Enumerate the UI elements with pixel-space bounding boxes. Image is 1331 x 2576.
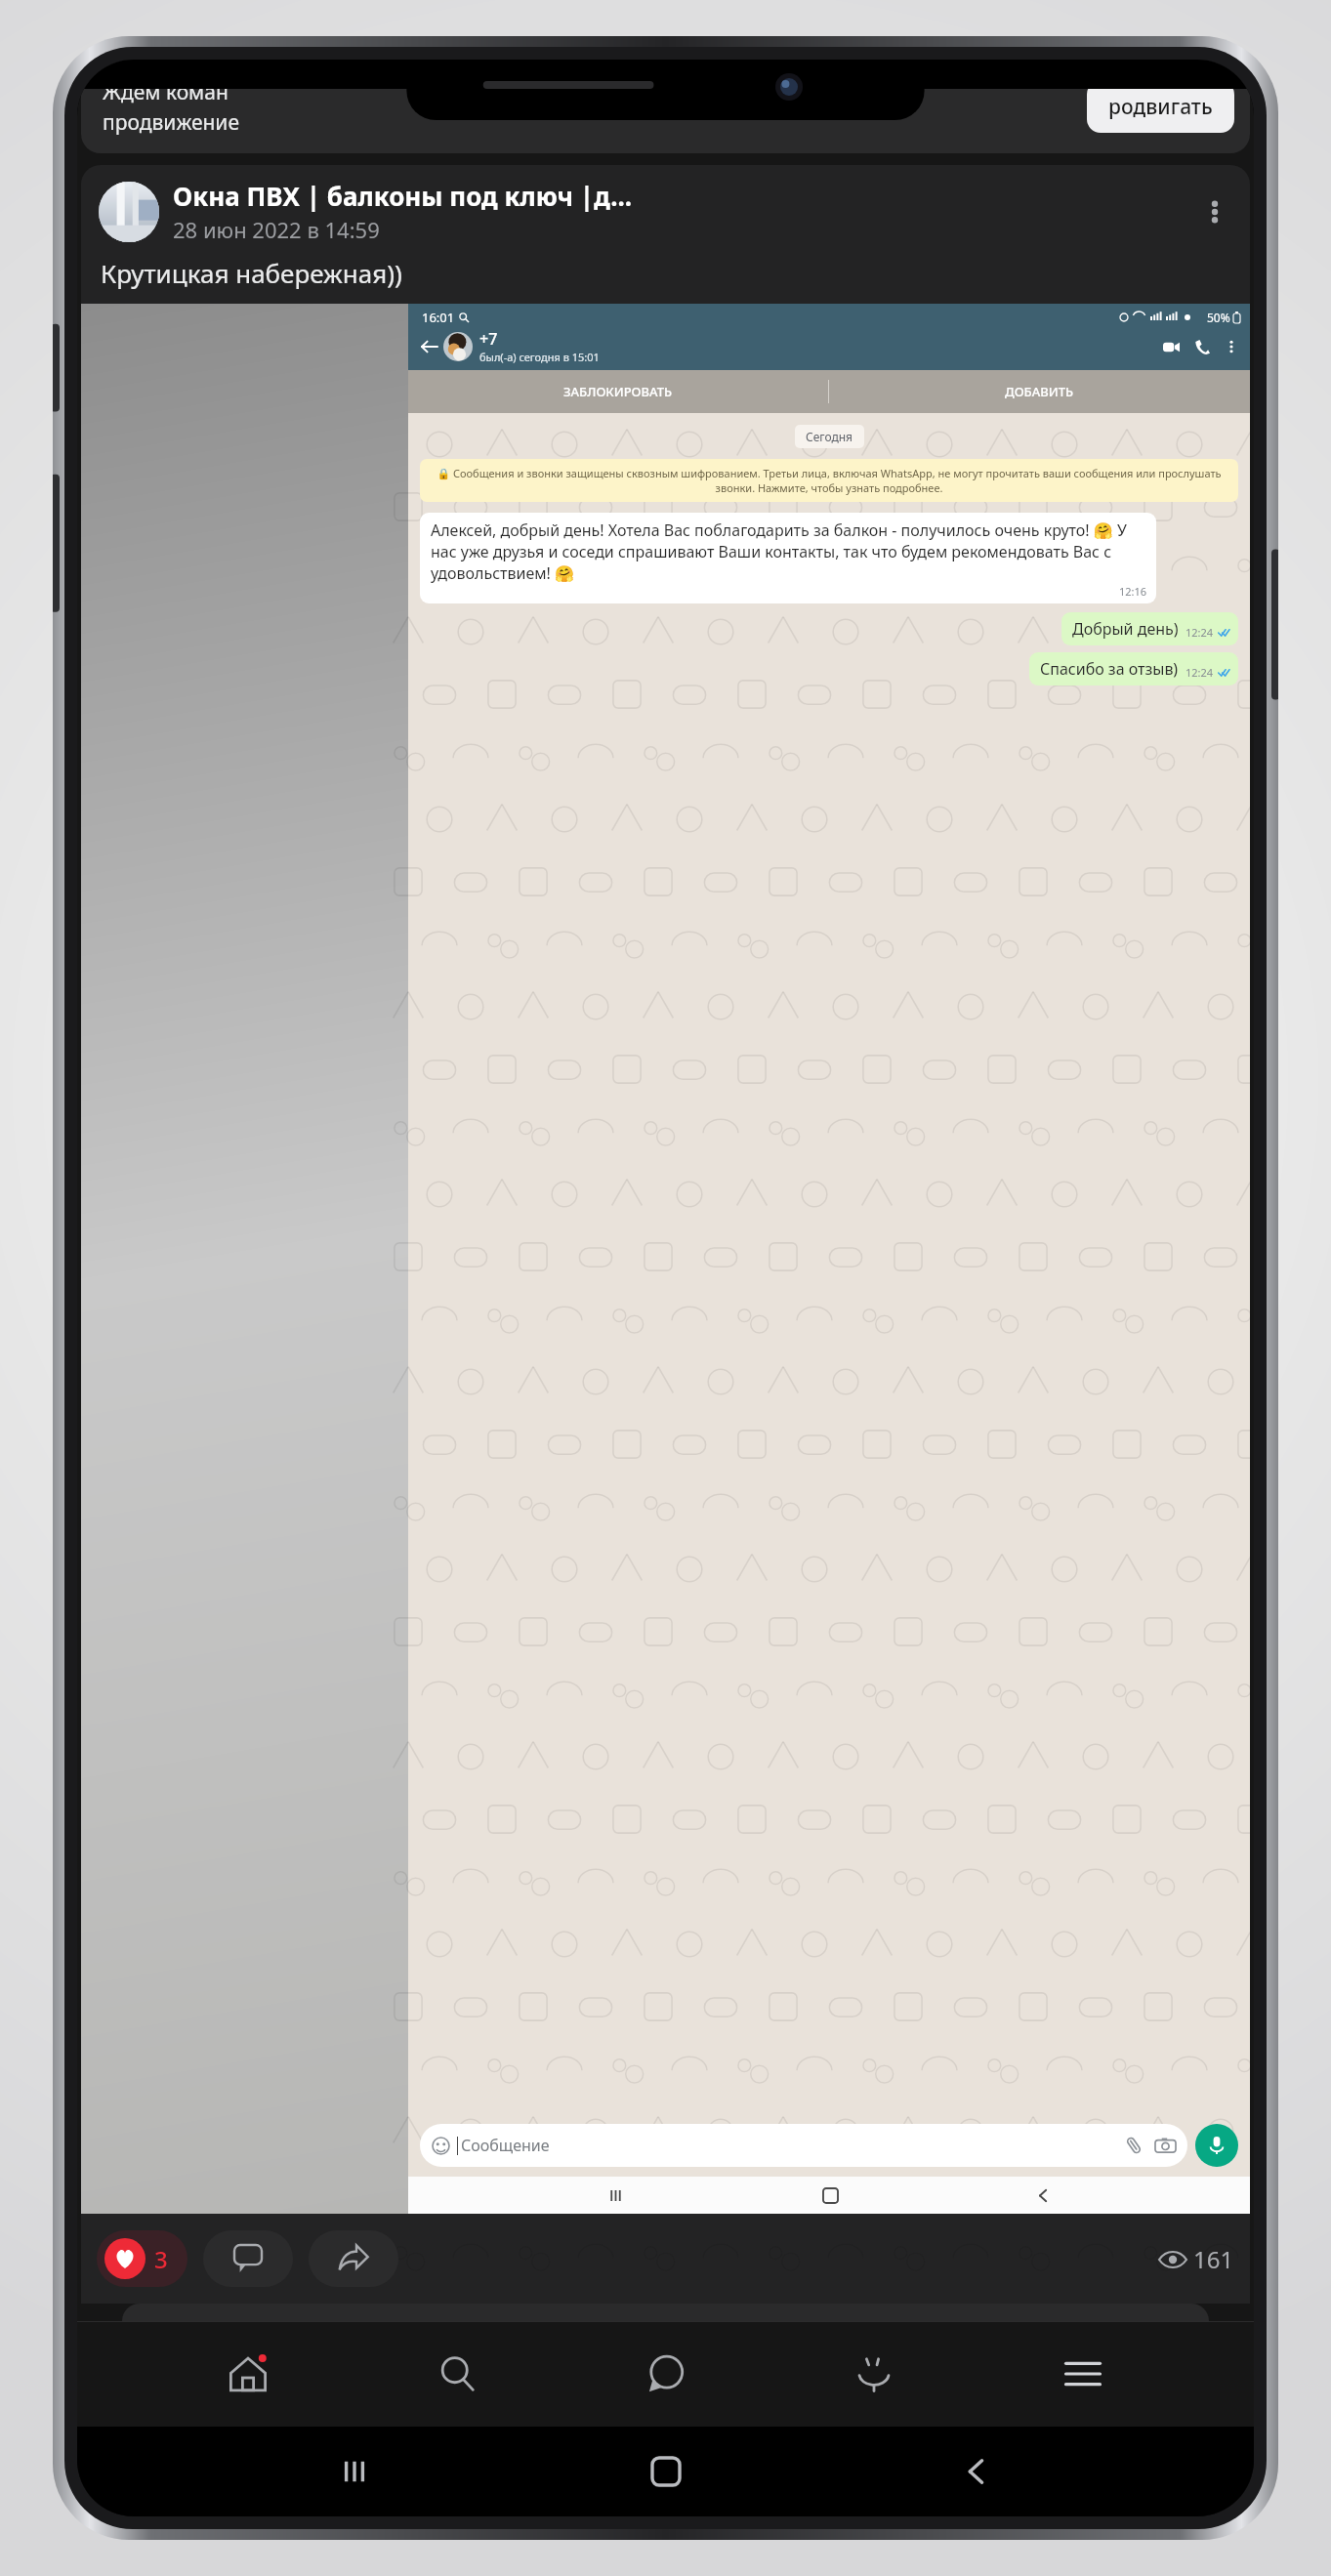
button[interactable]: Share	[309, 2230, 398, 2287]
button[interactable]: Menu	[1221, 336, 1242, 357]
button[interactable]: Menu	[1045, 2336, 1121, 2412]
staticText: 161	[1193, 2243, 1234, 2275]
button[interactable]: Back	[942, 2437, 1011, 2506]
staticText: 16:01	[422, 309, 455, 326]
button[interactable]: ЗАБЛОКИРОВАТЬ	[408, 370, 828, 413]
button[interactable]: Ждём коман продвижение	[81, 60, 1250, 153]
button[interactable]: Home	[210, 2336, 286, 2412]
staticText: 28 июн 2022 в 14:59	[173, 215, 380, 244]
staticText: Окна ПВХ | балконы под ключ |д...	[173, 179, 633, 213]
button[interactable]: Clips	[836, 2336, 912, 2412]
button[interactable]: Voice message	[1195, 2124, 1238, 2167]
button[interactable]: 3	[97, 2230, 187, 2287]
staticText: Алексей, добрый день! Хотела Вас поблаго…	[431, 519, 1147, 584]
staticText: Ждём коман продвижение	[103, 78, 239, 136]
button[interactable]: ДОБАВИТЬ	[829, 370, 1250, 413]
staticText: ДОБАВИТЬ	[1005, 383, 1074, 400]
button[interactable]: Messages	[628, 2336, 704, 2412]
staticText: 🔒 Сообщения и звонки защищены сквозным ш…	[432, 466, 1227, 495]
button[interactable]: Окна ПВХ | балконы под ключ |д...	[99, 179, 1236, 244]
button[interactable]: More options	[1193, 190, 1236, 233]
staticText: Добрый день)	[1072, 618, 1179, 640]
staticText: 3	[154, 2243, 168, 2275]
staticText: Сообщение	[461, 2135, 550, 2156]
other: Attach	[1124, 2136, 1144, 2155]
staticText: 12:16	[1119, 584, 1147, 599]
staticText: 12:24	[1185, 665, 1214, 680]
button[interactable]: Home	[632, 2437, 700, 2506]
button[interactable]: Call	[1189, 334, 1215, 359]
button[interactable]: Back	[416, 334, 441, 359]
staticText: Крутицкая набережная))	[101, 256, 402, 290]
button[interactable]: родвигать	[1087, 81, 1234, 133]
staticText: 50%	[1207, 310, 1230, 325]
staticText: родвигать	[1108, 93, 1213, 121]
staticText: ЗАБЛОКИРОВАТЬ	[563, 383, 673, 400]
staticText: Спасибо за отзыв)	[1040, 658, 1179, 680]
button[interactable]: Video call	[1158, 334, 1184, 359]
button[interactable]: Recents	[320, 2437, 389, 2506]
staticText: был(-а) сегодня в 15:01	[479, 350, 600, 364]
staticText: Сегодня	[806, 429, 853, 444]
other: Camera	[1155, 2136, 1176, 2156]
staticText: +7	[479, 328, 498, 350]
button[interactable]: Сообщение	[420, 2124, 1187, 2167]
button[interactable]: Comment	[203, 2230, 293, 2287]
staticText: 12:24	[1185, 625, 1214, 640]
button[interactable]: Search	[419, 2336, 495, 2412]
